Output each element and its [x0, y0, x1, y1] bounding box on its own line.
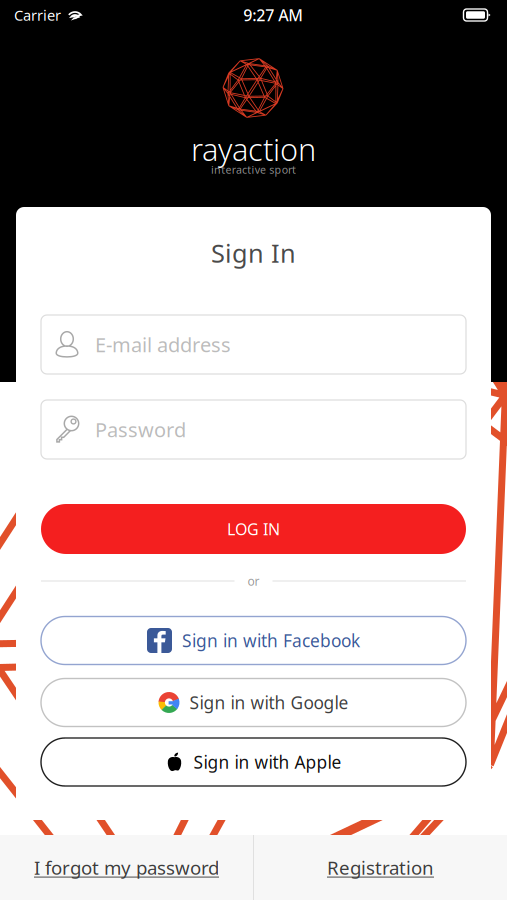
- staticText: Sign In: [211, 236, 296, 270]
- staticText: or: [247, 573, 259, 589]
- staticText: interactive sport: [211, 162, 296, 177]
- staticText: Registration: [327, 855, 434, 880]
- staticText: Sign in with Google: [189, 691, 348, 714]
- button[interactable]: LOG IN: [41, 504, 466, 554]
- staticText: LOG IN: [227, 518, 280, 540]
- button[interactable]: Sign in with Google: [41, 678, 466, 726]
- button[interactable]: I forgot my password: [0, 835, 253, 900]
- button[interactable]: Sign in with Apple: [41, 738, 466, 786]
- staticText: Sign in with Facebook: [182, 629, 360, 652]
- button[interactable]: Sign in with Facebook: [41, 616, 466, 664]
- staticText: rayaction: [191, 129, 316, 169]
- staticText: Sign in with Apple: [193, 750, 341, 773]
- staticText: 9:27 AM: [243, 4, 303, 26]
- staticText: Password: [95, 416, 186, 443]
- staticText: Carrier: [14, 5, 61, 25]
- button[interactable]: Registration: [254, 835, 507, 900]
- staticText: E-mail address: [95, 331, 231, 358]
- staticText: I forgot my password: [34, 855, 219, 880]
